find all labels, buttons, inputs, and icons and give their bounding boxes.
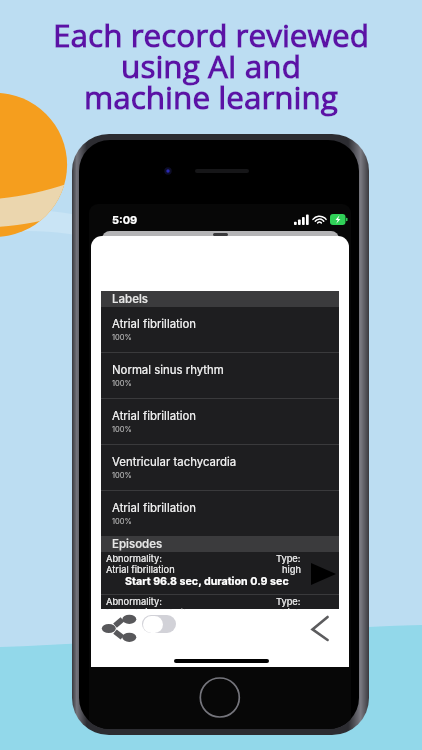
- staticText: 5:09: [112, 213, 138, 226]
- button[interactable]: Atrial fibrillation: [101, 307, 339, 352]
- staticText: high: [282, 607, 301, 610]
- staticText: Atrial fibrillation: [106, 564, 175, 575]
- button[interactable]: Share: [100, 614, 138, 648]
- staticText: Atrial fibrillation: [112, 409, 197, 423]
- staticText: Abnormality:: [106, 596, 162, 607]
- button[interactable]: Abnormality:: [101, 552, 339, 594]
- staticText: Start 96.8 sec, duration 0.9 sec: [125, 575, 289, 588]
- staticText: Ventricular tachycardia: [112, 455, 237, 469]
- staticText: Atrial fibrillation: [112, 501, 197, 515]
- staticText: 100%: [112, 379, 132, 388]
- staticText: Normal sinus rhythm: [112, 363, 224, 377]
- staticText: high: [282, 564, 301, 575]
- staticText: Type:: [276, 553, 301, 564]
- button[interactable]: Atrial fibrillation: [101, 491, 339, 536]
- staticText: Abnormality:: [106, 553, 162, 564]
- staticText: 100%: [112, 517, 132, 526]
- button[interactable]: Back: [312, 614, 336, 646]
- button[interactable]: Normal sinus rhythm: [101, 353, 339, 398]
- staticText: Normal sinus rhythm: [106, 607, 198, 610]
- button[interactable]: Ventricular tachycardia: [101, 445, 339, 490]
- staticText: Atrial fibrillation: [112, 317, 197, 331]
- button[interactable]: Abnormality:: [101, 595, 339, 609]
- button[interactable]: Toggle: [142, 615, 176, 633]
- staticText: 100%: [112, 425, 132, 434]
- staticText: 100%: [112, 471, 132, 480]
- staticText: Each record reviewed using AI and machin…: [53, 13, 369, 118]
- staticText: Type:: [276, 596, 301, 607]
- staticText: 100%: [112, 333, 132, 342]
- button[interactable]: Atrial fibrillation: [101, 399, 339, 444]
- staticText: Episodes: [112, 537, 163, 551]
- staticText: Labels: [112, 292, 148, 306]
